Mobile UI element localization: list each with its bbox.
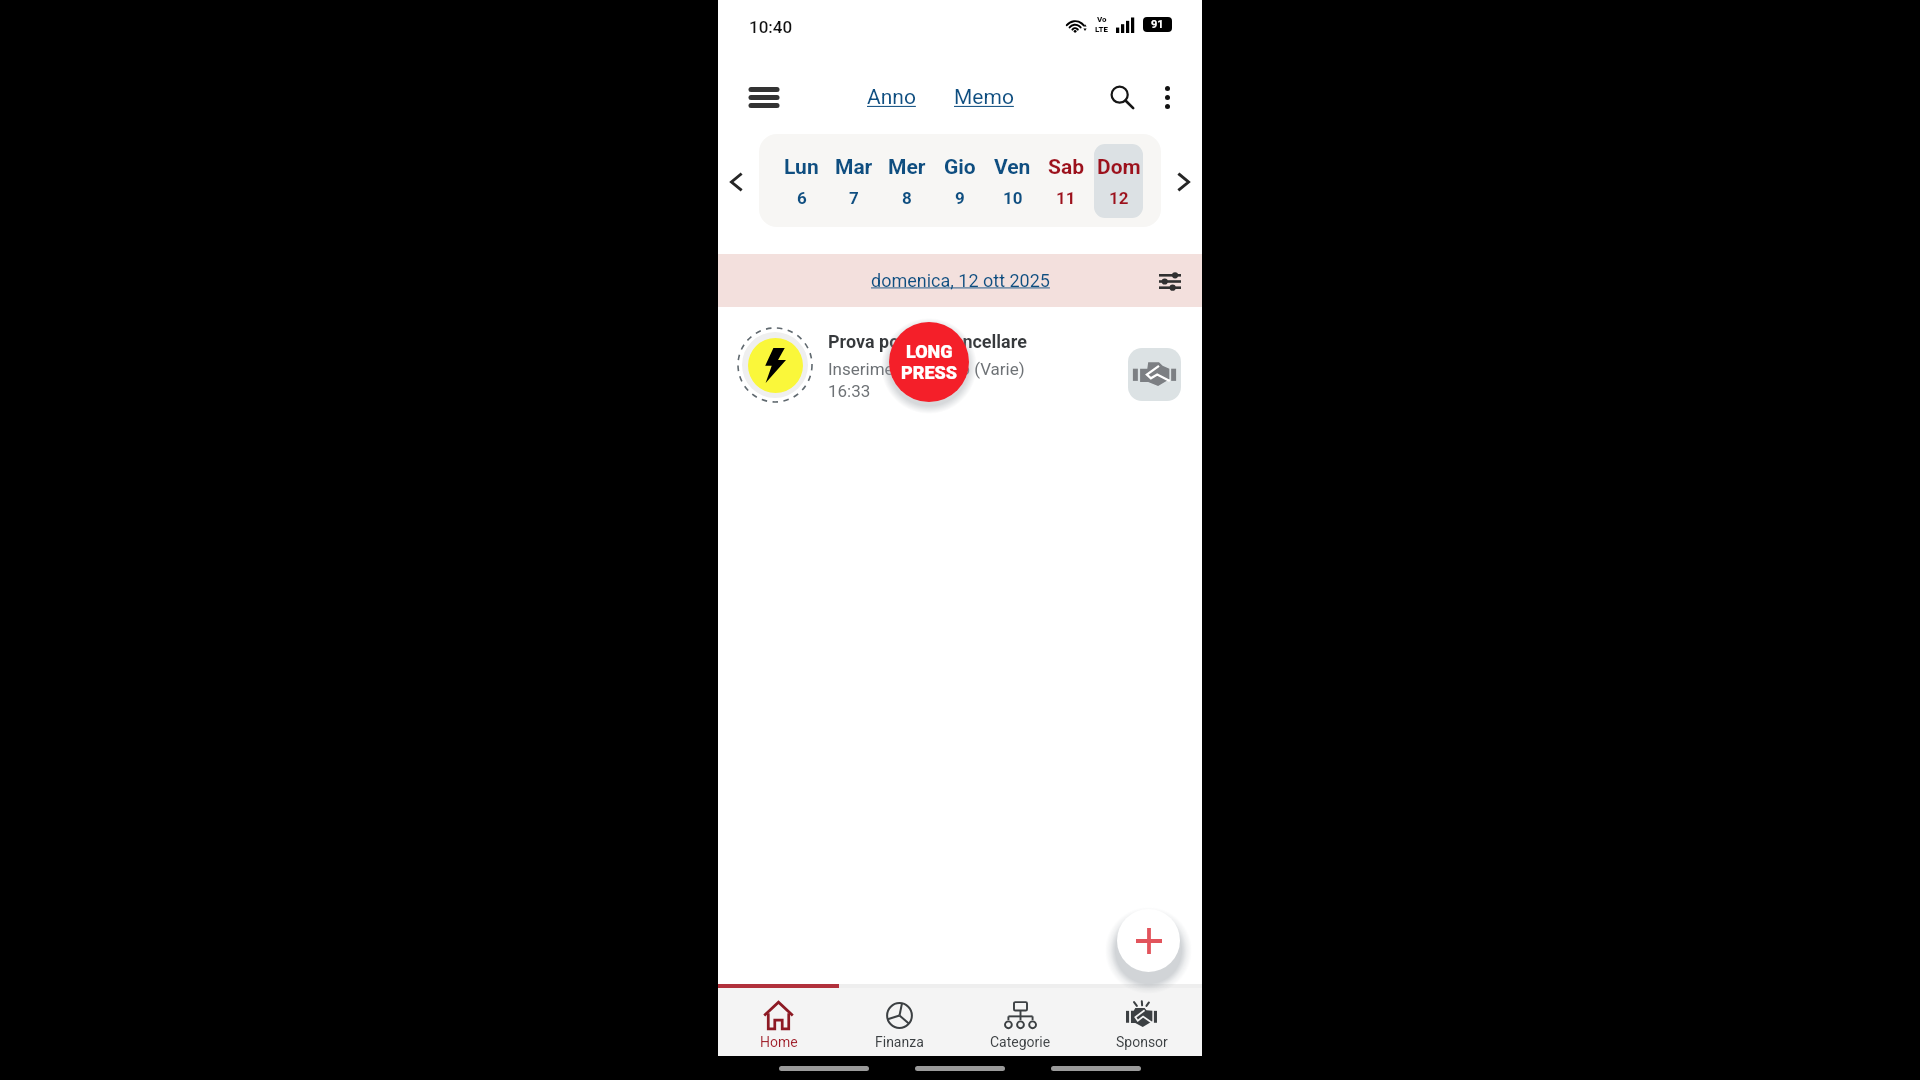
button[interactable]: Mer (882, 144, 931, 218)
staticText: 10 (1003, 188, 1023, 208)
staticText: Sab (1048, 155, 1084, 180)
staticText: Mer (888, 155, 926, 180)
staticText: 16:33 (828, 381, 871, 401)
staticText: Memo (954, 85, 1014, 110)
button[interactable]: Anno (867, 85, 916, 110)
button[interactable]: Sponsor (1128, 348, 1181, 401)
staticText: Prova post da cancellare (828, 331, 1027, 352)
staticText: Dom (1097, 155, 1141, 180)
button[interactable]: Cerca (1102, 77, 1142, 117)
staticText: 11 (1056, 188, 1076, 208)
button[interactable]: Gio (935, 144, 984, 218)
staticText: 12 (1109, 188, 1129, 208)
button[interactable]: domenica, 12 ott 2025 (871, 270, 1050, 291)
staticText: Home (760, 1034, 798, 1050)
button[interactable]: Sponsor (1081, 988, 1202, 1056)
staticText: Vo (1097, 15, 1107, 24)
staticText: LTE (1095, 25, 1109, 34)
staticText: 91 (1151, 18, 1164, 31)
staticText: Gio (944, 155, 976, 180)
button[interactable]: Ven (988, 144, 1037, 218)
staticText: 9 (955, 188, 965, 208)
staticText: Mar (835, 155, 873, 180)
button[interactable]: Sab (1041, 144, 1090, 218)
staticText: 6 (797, 188, 807, 208)
button[interactable]: Prova post da cancellare (718, 313, 1202, 407)
button[interactable]: Lun (777, 144, 826, 218)
button[interactable]: Categorie (960, 988, 1081, 1056)
button[interactable]: Filtri (1152, 263, 1188, 299)
staticText: 7 (849, 188, 859, 208)
button[interactable]: Home (718, 988, 839, 1056)
staticText: Finanza (875, 1034, 924, 1050)
button[interactable]: Menu (744, 77, 784, 117)
button[interactable]: Aggiungi (1117, 909, 1180, 972)
button[interactable]: Settimana precedente (719, 165, 753, 199)
staticText: LONG (906, 341, 953, 362)
staticText: Lun (784, 155, 819, 180)
button[interactable]: Settimana successiva (1167, 165, 1201, 199)
staticText: Anno (867, 85, 916, 110)
button[interactable]: Dom (1094, 144, 1143, 218)
staticText: Ven (994, 155, 1031, 180)
staticText: 10:40 (749, 17, 793, 37)
button[interactable]: Mar (829, 144, 878, 218)
staticText: 8 (902, 188, 912, 208)
button[interactable]: Altre opzioni (1147, 77, 1187, 117)
staticText: Inserimento rapido (Varie) (828, 359, 1025, 379)
staticText: Categorie (990, 1034, 1051, 1050)
staticText: PRESS (901, 362, 958, 383)
button[interactable]: Finanza (839, 988, 960, 1056)
staticText: Sponsor (1116, 1034, 1168, 1050)
staticText: domenica, 12 ott 2025 (871, 270, 1050, 291)
button[interactable]: Memo (954, 85, 1014, 110)
